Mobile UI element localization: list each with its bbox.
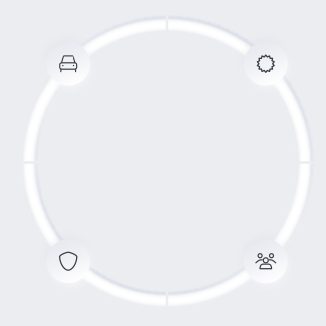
button[interactable]: Family — [0, 0, 326, 326]
button[interactable]: Settings — [0, 0, 326, 326]
button[interactable]: Vehicle — [0, 0, 326, 326]
button[interactable]: Security — [0, 0, 326, 326]
